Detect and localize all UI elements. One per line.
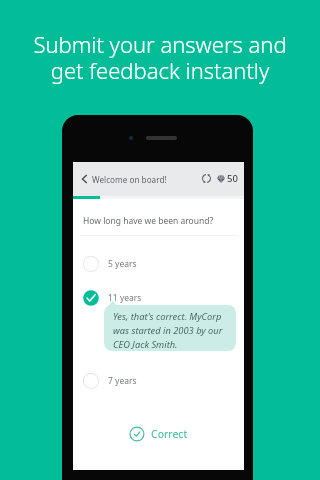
staticText: How long have we been around?	[83, 215, 214, 227]
button[interactable]: 11 years	[82, 289, 234, 307]
staticText: Yes, that's correct. MyCorp was started …	[113, 310, 224, 351]
button[interactable]: Back	[73, 168, 95, 190]
button[interactable]: 7 years	[82, 372, 234, 390]
staticText: 7 years	[108, 375, 137, 387]
button[interactable]: Refresh	[196, 168, 217, 189]
button[interactable]: Correct	[129, 426, 188, 442]
staticText: 5 years	[108, 258, 137, 270]
staticText: Correct	[151, 427, 188, 441]
button[interactable]: Gems	[214, 172, 228, 186]
staticText: Submit your answers and get feedback ins…	[0, 29, 320, 85]
staticText: 11 years	[108, 292, 142, 304]
staticText: Welcome on board!	[92, 174, 167, 185]
button[interactable]: 5 years	[82, 255, 234, 273]
staticText: 50	[227, 172, 238, 185]
